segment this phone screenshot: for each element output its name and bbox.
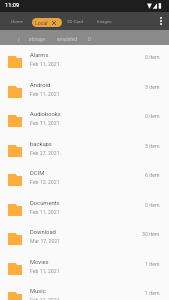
button[interactable]: Movies bbox=[0, 252, 169, 282]
staticText: 30 item bbox=[142, 231, 160, 237]
staticText: 0 item bbox=[145, 202, 160, 208]
staticText: Feb 11, 2021 bbox=[30, 91, 60, 97]
button[interactable]: Images bbox=[94, 12, 114, 30]
button[interactable]: Audiobooks bbox=[0, 104, 169, 134]
staticText: Images bbox=[97, 19, 112, 24]
staticText: 0 item bbox=[145, 113, 160, 119]
button[interactable]: Home bbox=[7, 12, 27, 30]
staticText: Android bbox=[30, 82, 51, 89]
staticText: 6 item bbox=[145, 172, 160, 178]
staticText: 0 item bbox=[145, 54, 160, 60]
staticText: Music bbox=[30, 288, 46, 295]
staticText: Feb 27, 2021 bbox=[30, 150, 60, 156]
button[interactable]: Android bbox=[0, 75, 169, 105]
staticText: Movies bbox=[30, 259, 49, 266]
button[interactable]: storage bbox=[29, 37, 46, 43]
staticText: 1 item bbox=[145, 261, 160, 267]
button[interactable]: Music bbox=[0, 281, 169, 300]
staticText: Audiobooks bbox=[30, 111, 61, 118]
staticText: 3 item bbox=[145, 84, 160, 90]
staticText: backups bbox=[30, 141, 52, 148]
staticText: Feb 11, 2021 bbox=[30, 268, 60, 274]
staticText: Feb 11, 2021 bbox=[30, 297, 60, 300]
button[interactable]: Documents bbox=[0, 193, 169, 223]
button[interactable]: 0 bbox=[88, 37, 91, 43]
staticText: 1 item bbox=[145, 290, 160, 296]
staticText: Download bbox=[30, 229, 56, 236]
staticText: Feb 11, 2021 bbox=[30, 61, 60, 67]
staticText: Alarms bbox=[30, 52, 49, 59]
button[interactable]: More options bbox=[152, 12, 169, 30]
staticText: 3 item bbox=[145, 143, 160, 149]
button[interactable]: Alarms bbox=[0, 45, 169, 75]
staticText: Documents bbox=[30, 200, 60, 207]
staticText: DCIM bbox=[30, 170, 45, 177]
button[interactable]: backups bbox=[0, 134, 169, 164]
button[interactable]: Local bbox=[32, 18, 62, 27]
button[interactable]: emulated bbox=[57, 37, 77, 43]
button[interactable]: DCIM bbox=[0, 163, 169, 193]
staticText: Feb 12, 2021 bbox=[30, 179, 60, 185]
staticText: SD-Card bbox=[67, 19, 83, 24]
staticText: Local bbox=[35, 20, 48, 26]
staticText: Feb 11, 2021 bbox=[30, 209, 60, 215]
button[interactable]: Download bbox=[0, 222, 169, 252]
button[interactable]: SD-Card bbox=[64, 12, 86, 30]
staticText: Mar 17, 2021 bbox=[30, 238, 61, 244]
staticText: 11:09 bbox=[5, 2, 20, 9]
staticText: Home bbox=[11, 19, 23, 24]
button[interactable]: / bbox=[18, 37, 20, 43]
staticText: Feb 11, 2021 bbox=[30, 120, 60, 126]
